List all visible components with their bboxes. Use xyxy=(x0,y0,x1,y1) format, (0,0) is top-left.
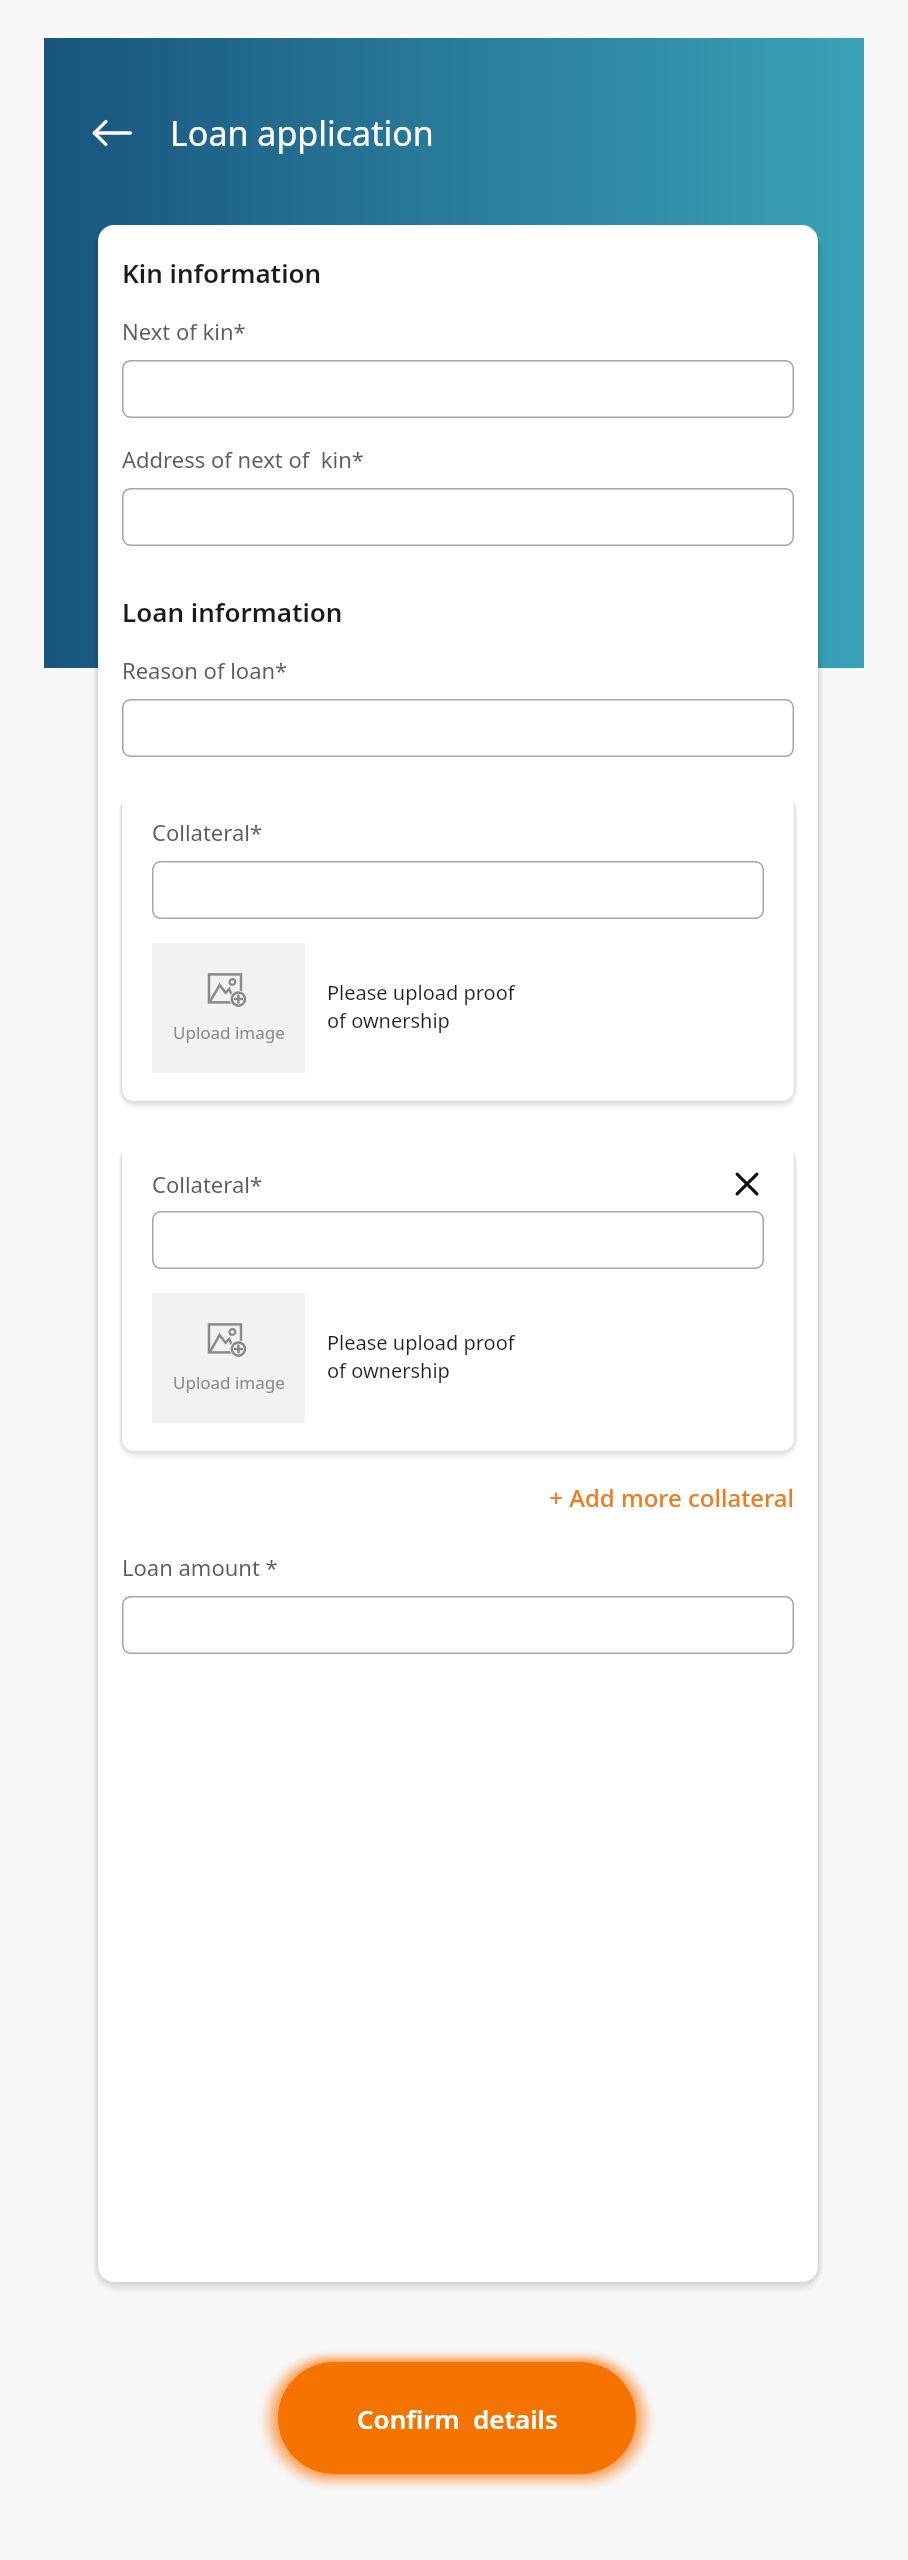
staticText: Next of kin* xyxy=(122,316,246,346)
staticText: Collateral* xyxy=(152,1169,263,1199)
button[interactable] xyxy=(152,861,764,919)
button[interactable] xyxy=(122,360,794,418)
button[interactable]: Upload image xyxy=(152,1293,305,1423)
staticText: Confirm details xyxy=(357,2401,558,2436)
button[interactable]: Remove collateral xyxy=(730,1167,764,1201)
staticText: Please upload proof of ownership xyxy=(327,1329,515,1384)
staticText: Reason of loan* xyxy=(122,655,288,685)
button[interactable]: Confirm details xyxy=(278,2362,636,2474)
staticText: + Add more collateral xyxy=(549,1481,794,1514)
staticText: Loan application xyxy=(170,110,434,156)
button[interactable]: Back xyxy=(80,101,144,165)
staticText: Upload image xyxy=(173,1371,285,1394)
staticText: Upload image xyxy=(173,1021,285,1044)
button[interactable] xyxy=(122,699,794,757)
staticText: Address of next of kin* xyxy=(122,444,364,474)
button[interactable] xyxy=(122,488,794,546)
button[interactable]: Collateral* xyxy=(122,793,794,1101)
staticText: Collateral* xyxy=(152,817,263,847)
button[interactable]: + Add more collateral xyxy=(122,1481,794,1514)
button[interactable] xyxy=(152,1211,764,1269)
button[interactable]: Upload image xyxy=(152,943,305,1073)
staticText: Loan information xyxy=(122,594,343,629)
staticText: Kin information xyxy=(122,255,322,290)
staticText: Please upload proof of ownership xyxy=(327,979,515,1034)
button[interactable]: Collateral* xyxy=(122,1143,794,1451)
button[interactable] xyxy=(122,1596,794,1654)
staticText: Loan amount * xyxy=(122,1552,278,1582)
